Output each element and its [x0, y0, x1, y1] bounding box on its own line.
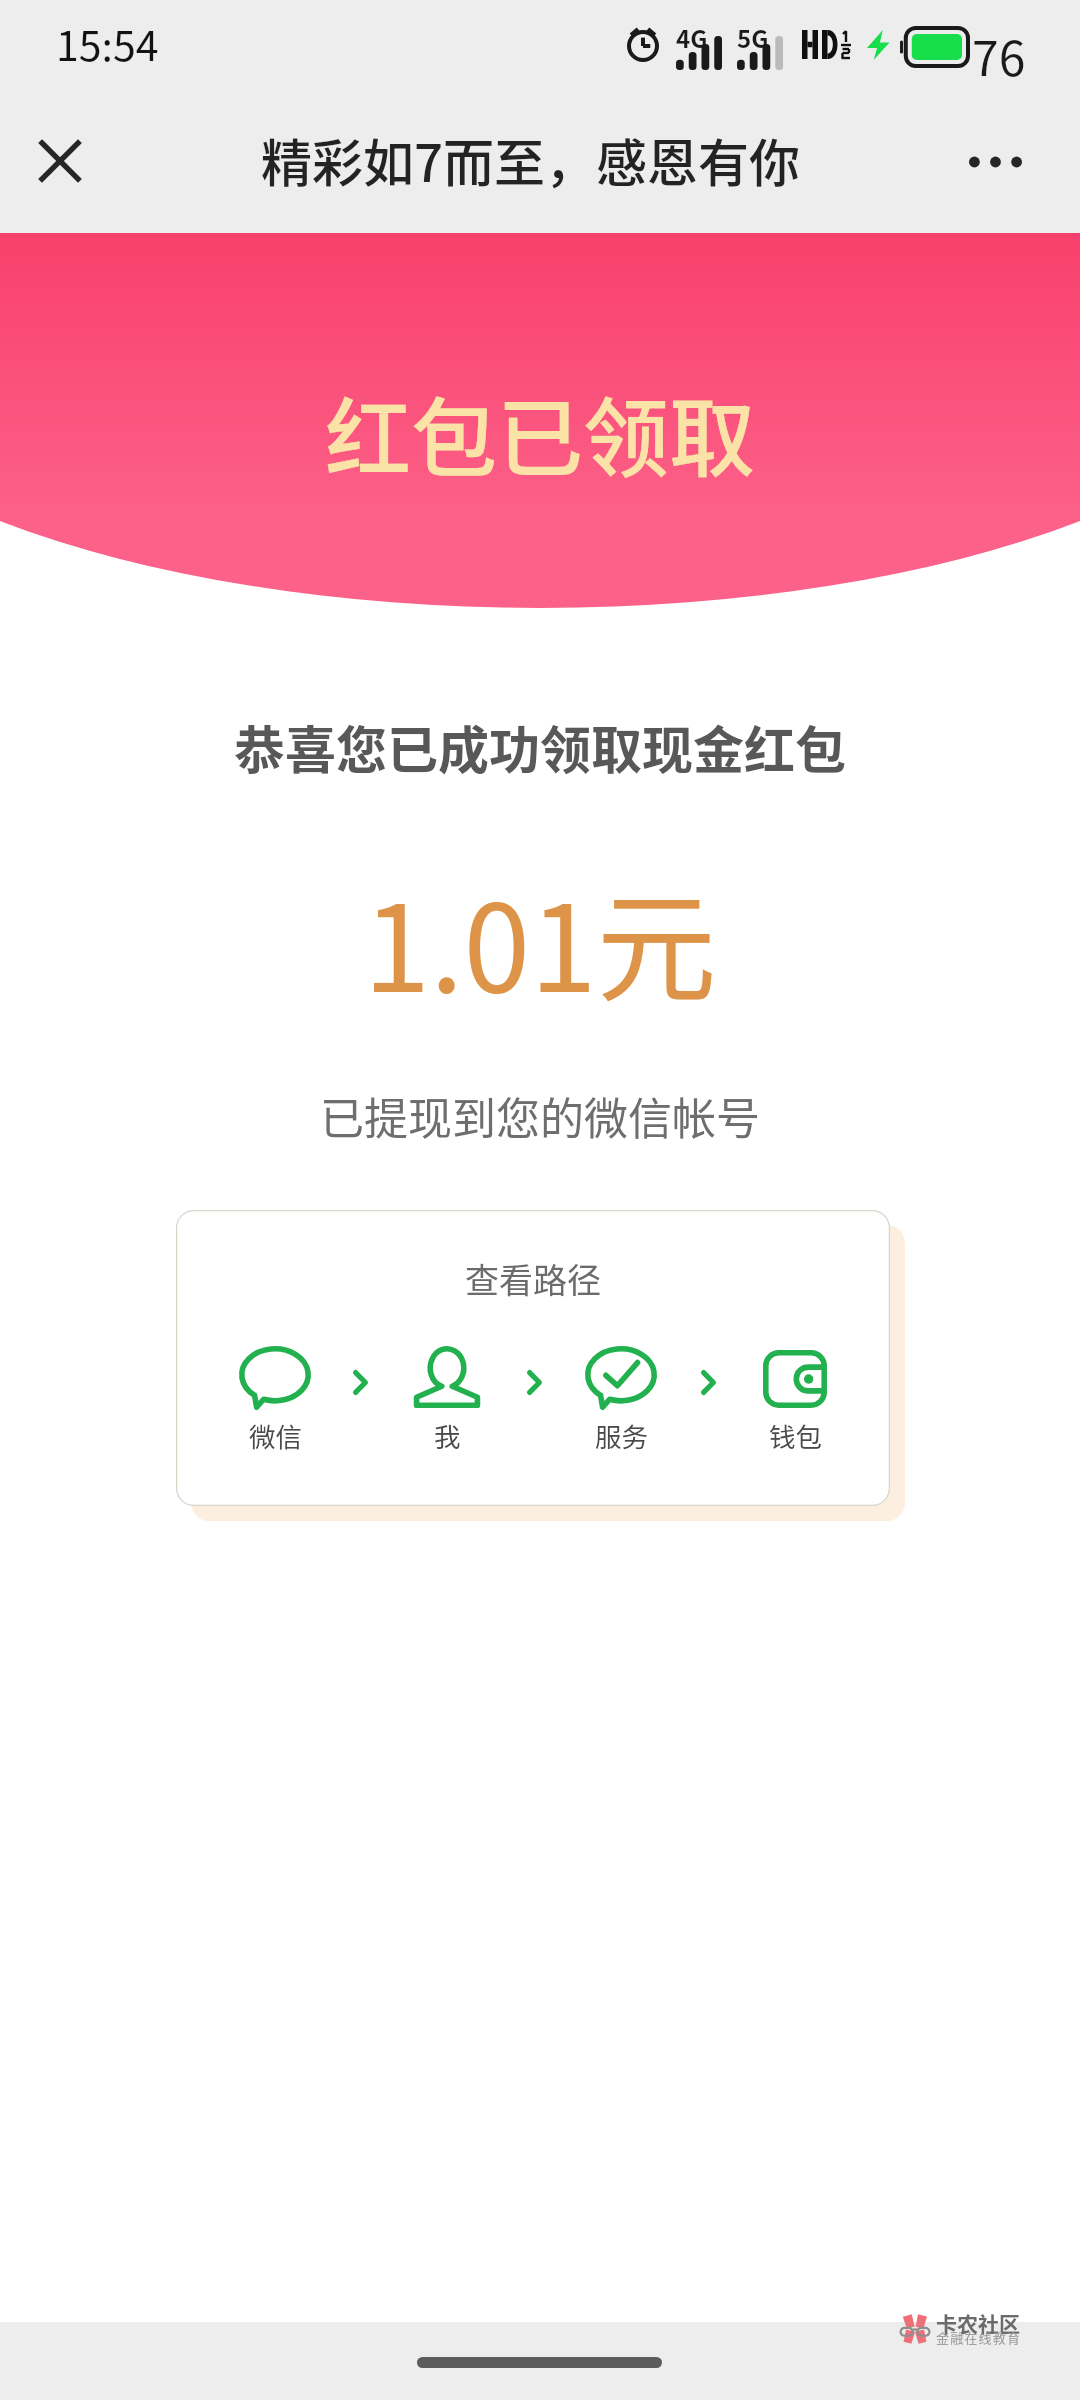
staticText: 服务 [595, 1416, 648, 1454]
staticText: 4G [676, 20, 708, 55]
staticText: 恭喜您已成功领取现金红包 [0, 710, 1080, 784]
button[interactable]: More options [930, 122, 1060, 202]
staticText: 卡农社区 [936, 2308, 1020, 2338]
button[interactable]: 查看路径 [176, 1210, 890, 1506]
staticText: 金融在线教育 [936, 2328, 1022, 2347]
button[interactable]: 钱包 [745, 1346, 845, 1454]
button[interactable]: 服务 [571, 1346, 671, 1454]
staticText: 76 [972, 20, 1026, 90]
button[interactable]: 微信 [225, 1346, 325, 1454]
staticText: 15:54 [56, 13, 159, 72]
staticText: 查看路径 [176, 1254, 890, 1303]
button[interactable]: Home [417, 2357, 662, 2368]
staticText: 红包已领取 [0, 370, 1080, 495]
staticText: 微信 [249, 1416, 302, 1454]
button[interactable]: 我 [397, 1346, 497, 1454]
staticText: 1.01元 [0, 853, 1080, 1027]
staticText: 5G [737, 20, 769, 55]
button[interactable]: Close [20, 121, 100, 201]
staticText: 钱包 [769, 1416, 822, 1454]
staticText: 精彩如7而至，感恩有你 [261, 123, 801, 197]
staticText: 我 [434, 1416, 461, 1454]
staticText: 已提现到您的微信帐号 [0, 1084, 1080, 1148]
